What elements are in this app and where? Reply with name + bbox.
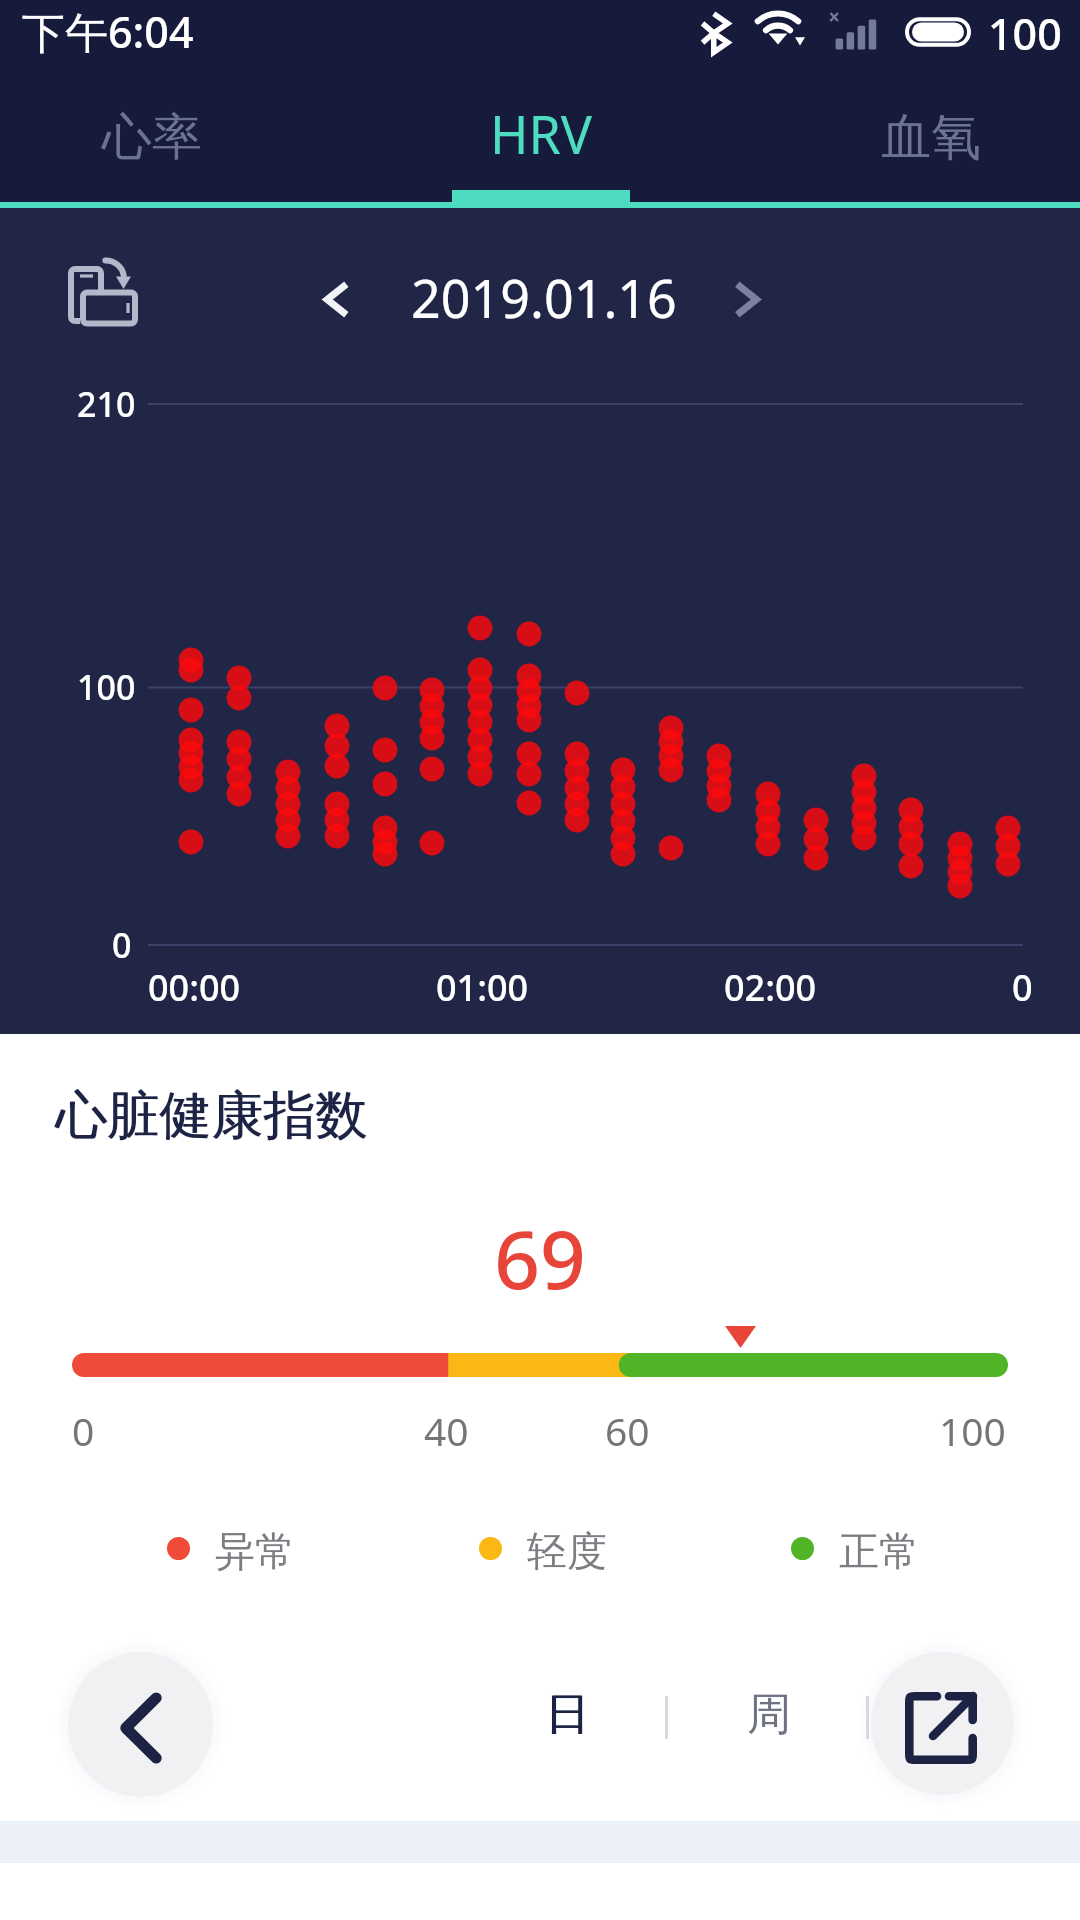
staticText: 下午6:04 <box>22 2 194 61</box>
button[interactable]: 异常 <box>155 1514 301 1584</box>
button[interactable]: Back <box>68 1652 213 1797</box>
staticText: 0 <box>1012 963 1033 1012</box>
button[interactable]: 心率 <box>0 78 360 202</box>
staticText: 60 <box>605 1404 650 1457</box>
staticText: 异常 <box>215 1526 295 1576</box>
button[interactable]: 轻度 <box>467 1514 613 1584</box>
staticText: 正常 <box>839 1526 919 1576</box>
staticText: 01:00 <box>436 963 529 1012</box>
staticText: 00:00 <box>148 963 241 1012</box>
staticText: 血氧 <box>861 106 1001 169</box>
staticText: 0 <box>112 922 132 968</box>
staticText: 心率 <box>82 106 222 169</box>
staticText: 轻度 <box>527 1526 607 1576</box>
button[interactable]: Share <box>871 1652 1014 1795</box>
staticText: 100 <box>939 1404 1006 1457</box>
staticText: 2019.01.16 <box>411 262 677 333</box>
staticText: 40 <box>424 1404 469 1457</box>
staticText: 周 <box>747 1687 791 1742</box>
button[interactable]: Next day <box>707 260 785 338</box>
staticText: 69 <box>0 1203 1080 1312</box>
button[interactable]: Previous day <box>297 260 375 338</box>
staticText: 100 <box>77 664 136 710</box>
staticText: 日 <box>546 1687 590 1742</box>
staticText: 100 <box>988 4 1062 63</box>
button[interactable]: 日 <box>525 1665 611 1761</box>
button[interactable]: Rotate screen <box>50 248 158 342</box>
staticText: 心脏健康指数 <box>55 1083 367 1149</box>
button[interactable]: 正常 <box>779 1514 925 1584</box>
staticText: 心脏健康指数 <box>56 1083 368 1149</box>
staticText: HRV <box>471 98 611 169</box>
button[interactable]: 血氧 <box>720 78 1080 202</box>
staticText: 日 <box>545 1687 589 1742</box>
button[interactable]: HRV <box>360 78 720 202</box>
staticText: 0 <box>72 1404 95 1457</box>
staticText: 210 <box>77 381 136 427</box>
staticText: 02:00 <box>724 963 817 1012</box>
button[interactable]: 周 <box>727 1665 813 1761</box>
